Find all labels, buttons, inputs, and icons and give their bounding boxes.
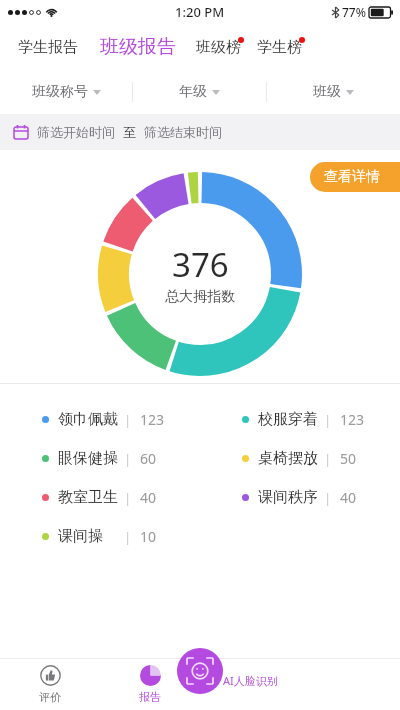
button[interactable]: AI人脸识别: [177, 648, 223, 694]
staticText: 班级: [313, 83, 341, 101]
staticText: 40: [140, 488, 157, 507]
staticText: 123: [140, 410, 165, 429]
button[interactable]: 班级称号: [0, 70, 132, 114]
staticText: 年级: [179, 83, 207, 101]
staticText: 课间操: [58, 527, 103, 546]
staticText: 眼保健操: [58, 449, 118, 468]
staticText: 至: [123, 124, 136, 140]
button[interactable]: 桌椅摆放: [200, 449, 400, 468]
staticText: 教室卫生: [58, 488, 118, 507]
button[interactable]: 班级: [267, 70, 400, 114]
staticText: 376: [172, 242, 229, 287]
staticText: |: [324, 411, 332, 429]
staticText: 总大拇指数: [165, 288, 235, 306]
staticText: 课间秩序: [258, 488, 318, 507]
staticText: |: [324, 489, 332, 507]
staticText: 筛选开始时间: [37, 124, 115, 140]
button[interactable]: 年级: [133, 70, 266, 114]
button[interactable]: 课间操: [0, 527, 200, 546]
button[interactable]: 学生报告: [16, 34, 80, 61]
button[interactable]: 查看详情: [310, 162, 400, 192]
staticText: 报告: [139, 690, 161, 704]
staticText: 50: [340, 449, 357, 468]
staticText: |: [124, 450, 132, 468]
button[interactable]: 学生榜: [255, 34, 304, 61]
staticText: 班级榜: [196, 38, 241, 57]
staticText: 10: [140, 527, 157, 546]
button[interactable]: 校服穿着: [200, 410, 400, 429]
staticText: 60: [140, 449, 157, 468]
staticText: 123: [340, 410, 365, 429]
button[interactable]: 评价: [0, 658, 100, 710]
staticText: 筛选结束时间: [144, 124, 222, 140]
button[interactable]: 筛选结束时间: [144, 124, 222, 140]
button[interactable]: 班级榜: [194, 34, 243, 61]
staticText: 桌椅摆放: [258, 449, 318, 468]
staticText: 学生榜: [257, 38, 302, 57]
staticText: 1:20 PM: [175, 3, 225, 21]
button[interactable]: 班级报告: [98, 31, 178, 63]
button[interactable]: 教室卫生: [0, 488, 200, 507]
button[interactable]: 课间秩序: [200, 488, 400, 507]
button[interactable]: 领巾佩戴: [0, 410, 200, 429]
staticText: |: [324, 450, 332, 468]
button[interactable]: 眼保健操: [0, 449, 200, 468]
staticText: 40: [340, 488, 357, 507]
staticText: |: [124, 489, 132, 507]
button[interactable]: 报告: [100, 658, 200, 710]
staticText: |: [124, 411, 132, 429]
staticText: 班级称号: [32, 83, 88, 101]
staticText: AI人脸识别: [223, 673, 278, 688]
staticText: 学生报告: [18, 38, 78, 57]
staticText: 77%: [342, 4, 366, 20]
staticText: 领巾佩戴: [58, 410, 118, 429]
staticText: 班级报告: [100, 35, 176, 59]
staticText: 查看详情: [324, 168, 380, 186]
staticText: |: [124, 528, 132, 546]
staticText: 校服穿着: [258, 410, 318, 429]
button[interactable]: 筛选开始时间: [37, 124, 115, 140]
staticText: 评价: [39, 690, 61, 704]
